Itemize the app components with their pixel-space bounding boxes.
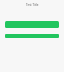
staticText: Test Title: [26, 3, 39, 7]
